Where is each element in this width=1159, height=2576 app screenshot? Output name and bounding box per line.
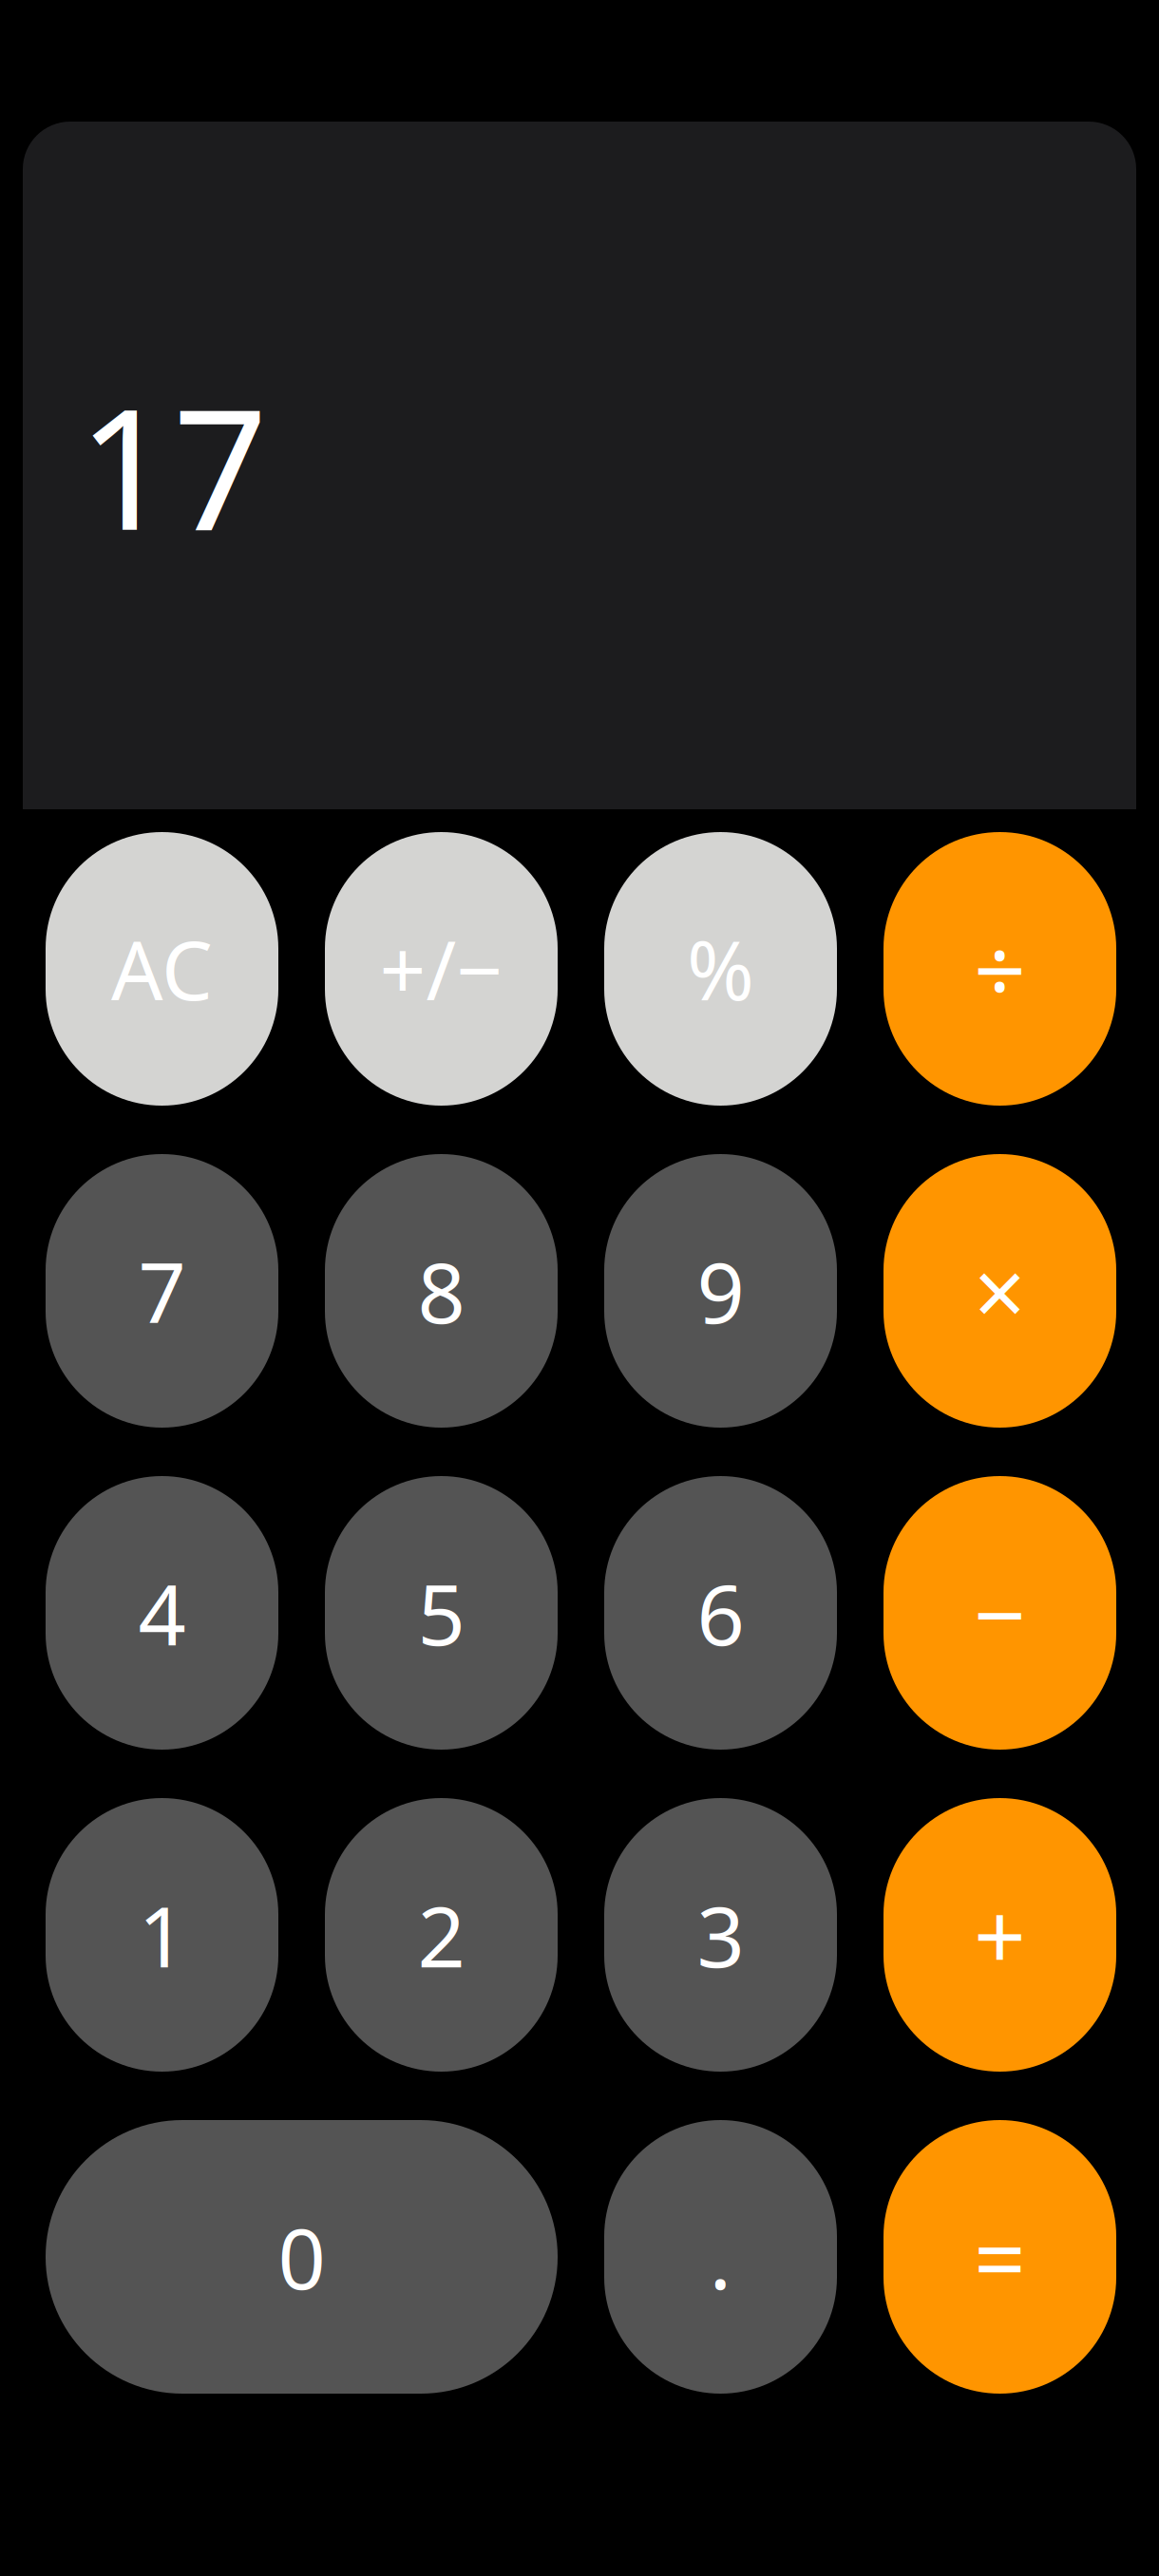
staticText: 5 xyxy=(418,1557,465,1668)
staticText: 0 xyxy=(278,2201,325,2312)
staticText: 6 xyxy=(697,1557,744,1668)
staticText: 9 xyxy=(697,1235,744,1346)
staticText: + xyxy=(974,1874,1026,1995)
button[interactable]: 7 xyxy=(46,1154,278,1428)
button[interactable]: Equals xyxy=(883,2120,1116,2394)
button[interactable]: All Clear xyxy=(46,832,278,1106)
button[interactable]: 0 xyxy=(46,2120,558,2394)
button[interactable]: Decimal Point xyxy=(604,2120,837,2394)
staticText: . xyxy=(709,2201,732,2312)
button[interactable]: 9 xyxy=(604,1154,837,1428)
staticText: 7 xyxy=(138,1235,186,1346)
staticText: × xyxy=(974,1230,1026,1351)
button[interactable]: Minus xyxy=(883,1476,1116,1750)
staticText: 2 xyxy=(418,1879,465,1990)
staticText: 1 xyxy=(138,1879,186,1990)
button[interactable]: Plus xyxy=(883,1798,1116,2072)
staticText: 4 xyxy=(138,1557,186,1668)
button[interactable]: 4 xyxy=(46,1476,278,1750)
button[interactable]: Divide xyxy=(883,832,1116,1106)
button[interactable]: Multiply xyxy=(883,1154,1116,1428)
staticText: 8 xyxy=(418,1235,465,1346)
staticText: AC xyxy=(111,915,213,1023)
button[interactable]: 3 xyxy=(604,1798,837,2072)
staticText: = xyxy=(974,2196,1026,2317)
staticText: 17 xyxy=(78,355,268,576)
button[interactable]: 5 xyxy=(325,1476,558,1750)
staticText: 3 xyxy=(697,1879,744,1990)
staticText: +/− xyxy=(380,915,503,1023)
button[interactable]: Plus Minus xyxy=(325,832,558,1106)
staticText: ÷ xyxy=(974,908,1026,1029)
button[interactable]: Percent xyxy=(604,832,837,1106)
staticText: % xyxy=(687,915,754,1023)
button[interactable]: 8 xyxy=(325,1154,558,1428)
button[interactable]: 1 xyxy=(46,1798,278,2072)
button[interactable]: 6 xyxy=(604,1476,837,1750)
button[interactable]: 2 xyxy=(325,1798,558,2072)
staticText: − xyxy=(974,1552,1026,1673)
